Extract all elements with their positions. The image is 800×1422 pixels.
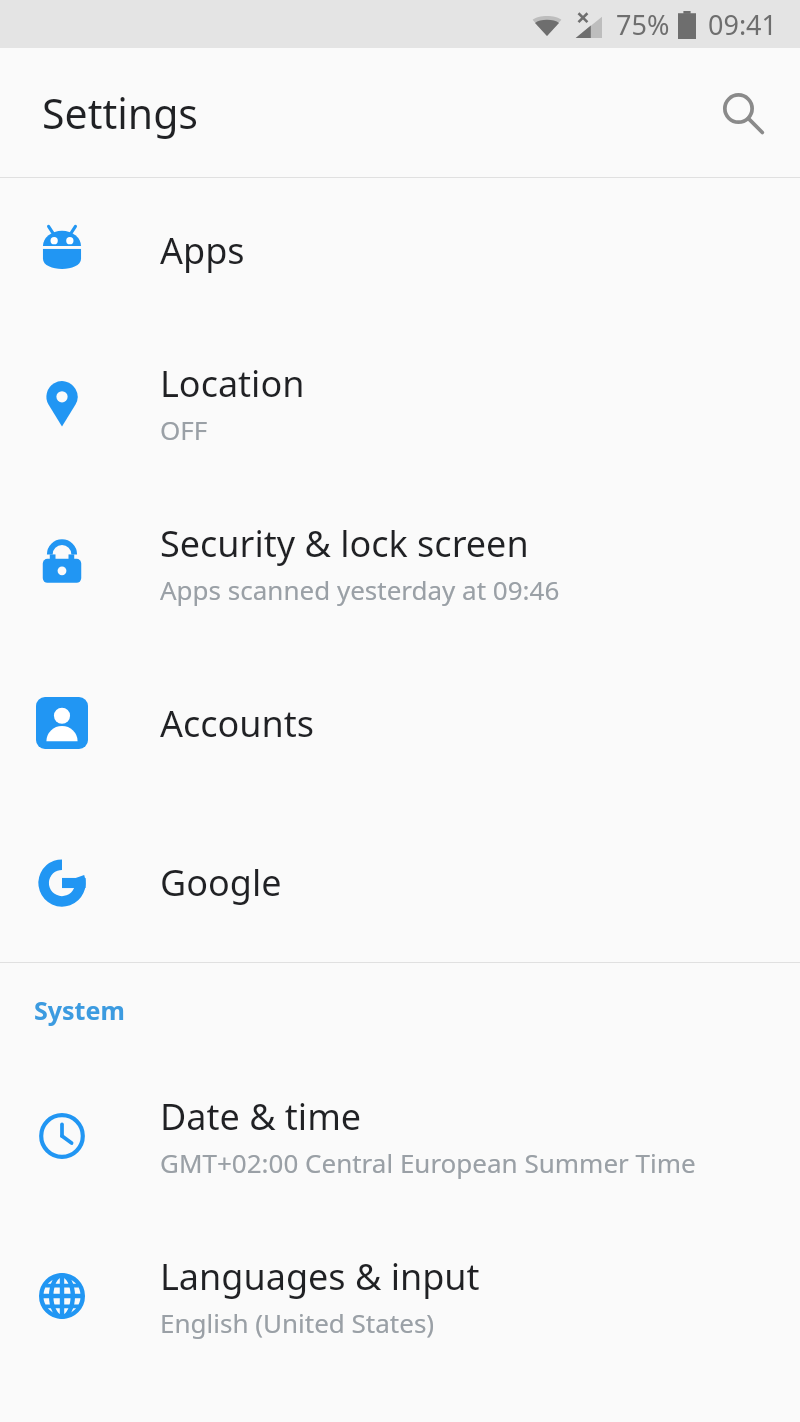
button[interactable]: Security & lock screen bbox=[0, 483, 800, 643]
button[interactable]: Google bbox=[0, 803, 800, 962]
staticText: Security & lock screen bbox=[160, 519, 529, 568]
staticText: English (United States) bbox=[160, 1305, 435, 1340]
staticText: Settings bbox=[42, 85, 199, 141]
button[interactable]: Apps bbox=[0, 178, 800, 323]
staticText: Apps bbox=[160, 226, 245, 275]
button[interactable]: System bbox=[0, 963, 800, 1056]
staticText: 09:41 bbox=[708, 6, 778, 43]
staticText: Date & time bbox=[160, 1092, 362, 1141]
staticText: Location bbox=[160, 359, 305, 408]
staticText: System bbox=[34, 993, 125, 1027]
staticText: OFF bbox=[160, 412, 208, 447]
staticText: 75% bbox=[616, 6, 670, 43]
button[interactable]: Search bbox=[706, 77, 778, 149]
staticText: Apps scanned yesterday at 09:46 bbox=[160, 572, 560, 607]
button[interactable]: Languages & input bbox=[0, 1216, 800, 1376]
staticText: Languages & input bbox=[160, 1252, 480, 1301]
button[interactable]: Location bbox=[0, 323, 800, 483]
button[interactable]: Date & time bbox=[0, 1056, 800, 1216]
button[interactable]: Accounts bbox=[0, 643, 800, 803]
staticText: GMT+02:00 Central European Summer Time bbox=[160, 1145, 696, 1180]
staticText: Google bbox=[160, 858, 282, 907]
staticText: Accounts bbox=[160, 699, 315, 748]
